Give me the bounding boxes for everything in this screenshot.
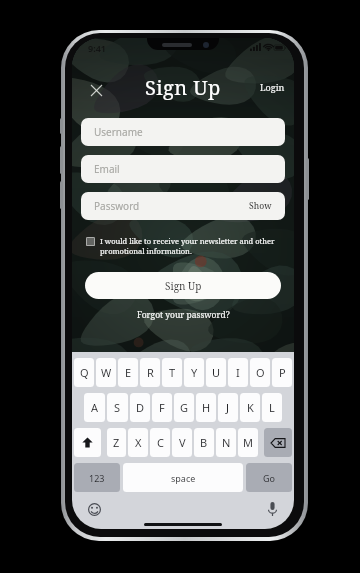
- button[interactable]: L: [262, 393, 282, 422]
- staticText: Email: [94, 162, 272, 176]
- button[interactable]: A: [84, 393, 105, 422]
- staticText: U: [212, 365, 221, 380]
- button[interactable]: Shift: [74, 428, 101, 457]
- button[interactable]: Sign Up: [85, 272, 281, 299]
- button[interactable]: F: [152, 393, 172, 422]
- button[interactable]: 123: [74, 463, 120, 492]
- staticText: 123: [89, 472, 105, 484]
- staticText: Y: [191, 365, 198, 380]
- staticText: N: [222, 435, 231, 450]
- button[interactable]: W: [96, 358, 116, 387]
- staticText: V: [179, 435, 186, 450]
- staticText: J: [226, 400, 230, 415]
- staticText: Go: [263, 472, 275, 484]
- button[interactable]: Q: [74, 358, 94, 387]
- staticText: Login: [260, 81, 285, 93]
- staticText: Username: [94, 125, 272, 139]
- button[interactable]: Y: [184, 358, 204, 387]
- button[interactable]: B: [194, 428, 214, 457]
- button[interactable]: P: [272, 358, 292, 387]
- button[interactable]: Forgot your password?: [131, 306, 236, 324]
- staticText: W: [101, 365, 112, 380]
- button[interactable]: R: [140, 358, 160, 387]
- button[interactable]: M: [238, 428, 258, 457]
- button[interactable]: D: [130, 393, 150, 422]
- staticText: Sign Up: [145, 74, 221, 101]
- staticText: Sign Up: [165, 279, 202, 293]
- button[interactable]: I would like to receive your newsletter …: [81, 235, 285, 257]
- button[interactable]: Dictation: [263, 500, 281, 518]
- staticText: A: [91, 400, 99, 415]
- staticText: D: [136, 400, 145, 415]
- button[interactable]: V: [172, 428, 192, 457]
- button[interactable]: U: [206, 358, 226, 387]
- button[interactable]: X: [128, 428, 148, 457]
- button[interactable]: T: [162, 358, 182, 387]
- staticText: I: [236, 365, 240, 380]
- staticText: M: [243, 435, 253, 450]
- button[interactable]: Login: [254, 76, 291, 98]
- button[interactable]: Close: [82, 76, 110, 104]
- button[interactable]: space: [123, 463, 243, 492]
- button[interactable]: Z: [107, 428, 126, 457]
- staticText: B: [200, 435, 208, 450]
- staticText: I would like to receive your newsletter …: [100, 236, 281, 256]
- button[interactable]: C: [150, 428, 170, 457]
- staticText: Z: [113, 435, 120, 450]
- staticText: X: [135, 435, 142, 450]
- button[interactable]: G: [174, 393, 194, 422]
- button[interactable]: S: [107, 393, 128, 422]
- staticText: space: [171, 472, 196, 484]
- button[interactable]: K: [240, 393, 260, 422]
- staticText: L: [269, 400, 275, 415]
- button[interactable]: Username: [81, 118, 285, 146]
- staticText: Password: [94, 199, 249, 213]
- staticText: S: [114, 400, 121, 415]
- button[interactable]: Password: [81, 192, 285, 220]
- button[interactable]: J: [218, 393, 238, 422]
- staticText: F: [159, 400, 165, 415]
- staticText: P: [279, 365, 286, 380]
- staticText: H: [202, 400, 211, 415]
- staticText: C: [157, 435, 164, 450]
- button[interactable]: E: [118, 358, 138, 387]
- staticText: O: [256, 365, 265, 380]
- staticText: K: [247, 400, 254, 415]
- button[interactable]: Go: [246, 463, 292, 492]
- staticText: E: [125, 365, 132, 380]
- staticText: R: [147, 365, 154, 380]
- button[interactable]: Email: [81, 155, 285, 183]
- button[interactable]: Emoji: [85, 500, 103, 518]
- button[interactable]: H: [196, 393, 216, 422]
- staticText: Show: [249, 200, 272, 212]
- staticText: Q: [80, 365, 89, 380]
- staticText: Forgot your password?: [137, 309, 230, 321]
- staticText: G: [180, 400, 189, 415]
- staticText: 9:41: [88, 42, 106, 54]
- button[interactable]: Backspace: [264, 428, 292, 457]
- button[interactable]: I: [228, 358, 248, 387]
- staticText: T: [169, 365, 176, 380]
- button[interactable]: O: [250, 358, 270, 387]
- button[interactable]: N: [216, 428, 236, 457]
